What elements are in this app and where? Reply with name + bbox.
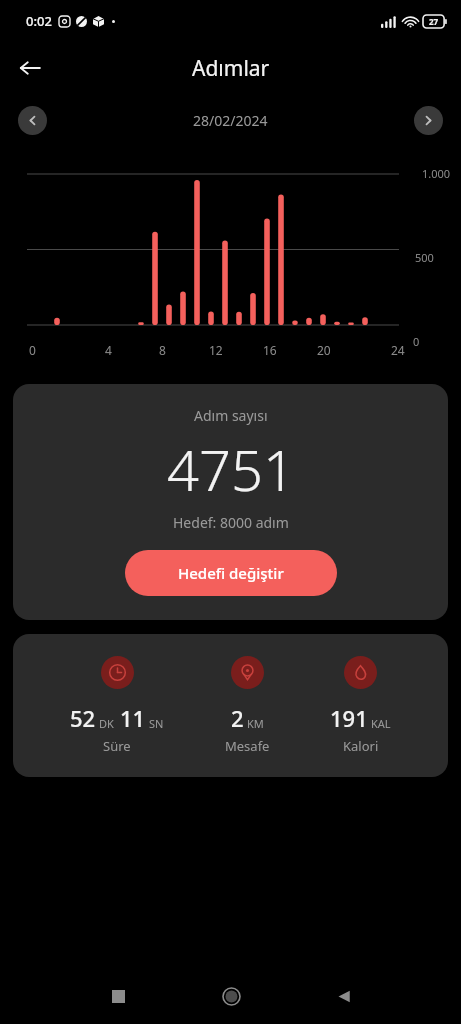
staticText: Mesafe	[225, 737, 270, 755]
button[interactable]: 52	[66, 656, 168, 755]
staticText: 4	[105, 342, 112, 358]
button[interactable]: Home	[210, 975, 252, 1017]
staticText: 4751	[167, 431, 295, 507]
staticText: 8	[159, 342, 166, 358]
staticText: 20	[317, 342, 331, 358]
staticText: Kalori	[343, 737, 379, 755]
staticText: 500	[415, 250, 434, 265]
button[interactable]: Back	[323, 975, 365, 1017]
staticText: 0:02	[26, 12, 52, 30]
staticText: DK	[99, 716, 114, 731]
staticText: Adım sayısı	[194, 406, 268, 425]
staticText: KM	[247, 716, 264, 731]
button[interactable]: Next day	[414, 106, 443, 135]
staticText: 16	[263, 342, 277, 358]
button[interactable]: Back	[8, 46, 52, 90]
staticText: 24	[391, 342, 405, 358]
button[interactable]: 2	[221, 656, 274, 755]
staticText: 52	[70, 703, 96, 733]
staticText: KAL	[371, 716, 391, 731]
staticText: 191	[330, 703, 368, 733]
staticText: 11	[120, 703, 146, 733]
staticText: Hedef: 8000 adım	[173, 513, 289, 532]
staticText: SN	[149, 716, 164, 731]
button[interactable]: Hedefi değiştir	[125, 550, 337, 596]
staticText: 12	[209, 342, 223, 358]
button[interactable]: Recent apps	[97, 975, 139, 1017]
staticText: 28/02/2024	[193, 111, 268, 130]
staticText: 27	[429, 16, 439, 27]
staticText: Adımlar	[192, 54, 270, 83]
staticText: Süre	[103, 737, 131, 755]
button[interactable]: Previous day	[18, 106, 47, 135]
staticText: 0	[413, 334, 420, 349]
staticText: 0	[29, 342, 36, 358]
staticText: Hedefi değiştir	[178, 563, 284, 583]
button[interactable]: 191	[326, 656, 395, 755]
staticText: 2	[231, 703, 244, 733]
staticText: 1.000	[422, 166, 451, 181]
